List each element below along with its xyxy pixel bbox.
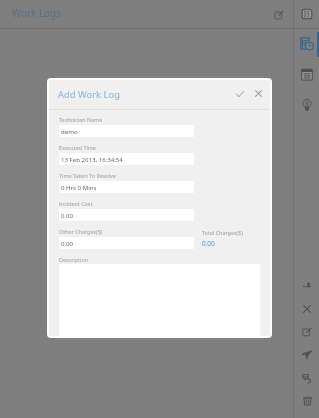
button[interactable]: Assign [293, 274, 319, 297]
button[interactable]: Close [252, 87, 265, 100]
staticText: 0 Hrs 0 Mins [61, 183, 97, 191]
button[interactable]: Save [233, 87, 246, 100]
staticText: Technician Name [59, 116, 103, 123]
button[interactable]: Reply [293, 366, 319, 389]
staticText: 0.00 [202, 239, 215, 248]
button[interactable]: Solutions [293, 90, 319, 120]
button[interactable]: 0.00 [59, 209, 194, 221]
staticText: Executed Time [59, 144, 96, 151]
staticText: Time Taken To Resolve [59, 172, 116, 179]
button[interactable]: demo [59, 125, 194, 137]
button[interactable]: Delete [293, 389, 319, 412]
button[interactable]: Table [293, 0, 319, 29]
button[interactable]: Work log [293, 29, 319, 59]
staticText: 0.00 [61, 239, 74, 247]
staticText: Incident Cost [59, 200, 93, 207]
staticText: Work Logs [12, 6, 61, 19]
staticText: Description [59, 256, 89, 263]
button[interactable]: Edit [293, 320, 319, 343]
button[interactable]: Notes [293, 59, 319, 89]
button[interactable]: Edit [269, 5, 288, 24]
staticText: Total Charges($) [202, 229, 243, 236]
button[interactable]: Send [293, 343, 319, 366]
button[interactable]: 0 Hrs 0 Mins [59, 181, 194, 193]
staticText: demo [61, 127, 78, 135]
button[interactable]: 0.00 [59, 237, 194, 249]
button[interactable]: Close request [293, 297, 319, 320]
staticText: 0.00 [61, 211, 74, 219]
staticText: Other Charges($) [59, 228, 103, 235]
button[interactable]: 13 Feb 2013, 16:34:54 [59, 153, 194, 165]
staticText: 13 Feb 2013, 16:34:54 [61, 155, 123, 163]
staticText: Add Work Log [58, 88, 120, 101]
